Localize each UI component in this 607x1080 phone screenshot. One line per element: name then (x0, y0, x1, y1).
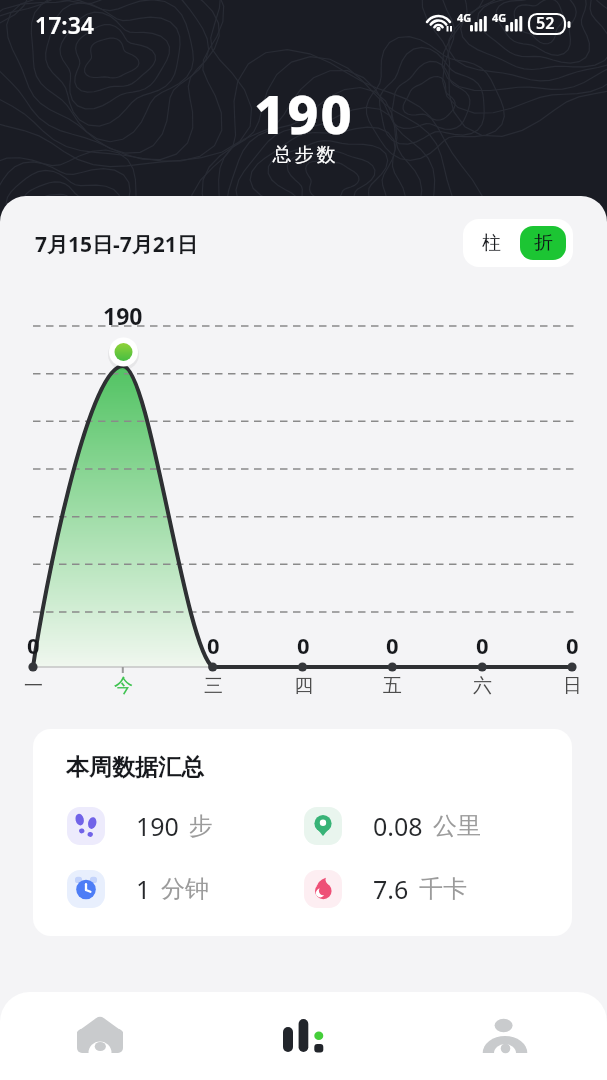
staticText: 4G (492, 10, 507, 25)
button[interactable]: 190 (67, 807, 213, 845)
staticText: 五 (383, 674, 402, 698)
staticText: 千卡 (419, 874, 467, 904)
button[interactable]: 柱 (463, 219, 520, 267)
staticText: 公里 (433, 811, 481, 841)
staticText: 190 (136, 809, 179, 843)
staticText: 总步数 (271, 143, 337, 167)
staticText: 折 (534, 231, 553, 255)
staticText: 190 (103, 300, 143, 331)
staticText: 7.6 (373, 872, 409, 906)
staticText: 柱 (482, 231, 501, 255)
staticText: 17:34 (35, 9, 94, 40)
staticText: 0.08 (373, 809, 423, 843)
staticText: 0 (207, 630, 220, 660)
staticText: 0 (566, 630, 579, 660)
staticText: 4G (457, 10, 472, 25)
staticText: 52 (536, 12, 555, 34)
staticText: 今 (114, 674, 133, 698)
staticText: 分钟 (161, 874, 209, 904)
button[interactable]: 7.6 (304, 870, 467, 908)
staticText: 0 (386, 630, 399, 660)
button[interactable]: 0.08 (304, 807, 481, 845)
staticText: 本周数据汇总 (66, 753, 204, 782)
staticText: 三 (204, 674, 223, 698)
button[interactable]: 1 (67, 870, 209, 908)
staticText: 六 (473, 674, 492, 698)
staticText: 0 (476, 630, 489, 660)
button[interactable]: 折 (520, 226, 566, 260)
staticText: 1 (136, 872, 151, 906)
staticText: 0 (297, 630, 310, 660)
staticText: 步 (189, 811, 213, 841)
staticText: 一 (24, 674, 43, 698)
button[interactable] (61, 1000, 141, 1072)
staticText: 四 (294, 674, 313, 698)
staticText: 190 (254, 76, 354, 150)
button[interactable] (465, 1000, 545, 1072)
staticText: 0 (27, 630, 40, 660)
staticText: 7月15日-7月21日 (35, 230, 198, 259)
staticText: 日 (563, 674, 582, 698)
button[interactable] (263, 1000, 343, 1072)
